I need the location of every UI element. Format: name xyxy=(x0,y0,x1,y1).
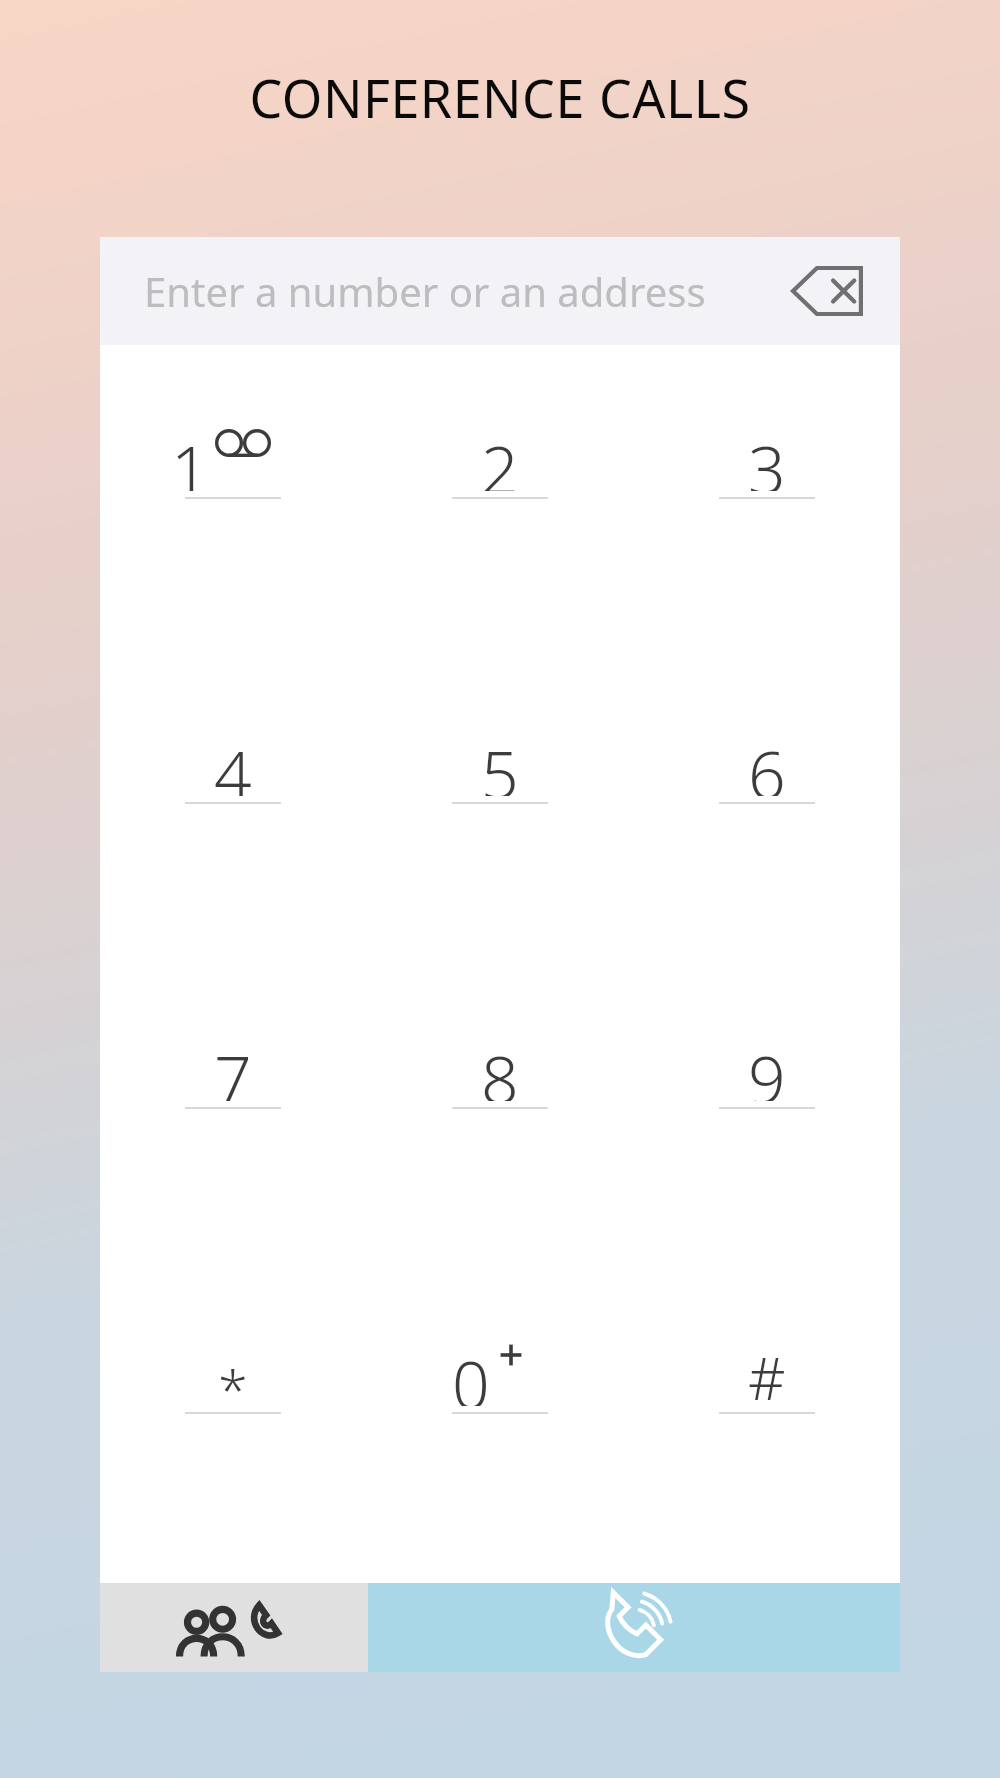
button[interactable]: * xyxy=(100,1338,366,1434)
staticText: 5 xyxy=(481,728,519,796)
staticText: 9 xyxy=(748,1033,786,1101)
button[interactable]: 6 xyxy=(633,728,900,824)
button[interactable]: # xyxy=(633,1338,900,1434)
button[interactable]: 1 xyxy=(100,423,366,519)
button[interactable]: 2 xyxy=(366,423,633,519)
button[interactable]: 0 xyxy=(366,1338,633,1434)
staticText: 1 xyxy=(171,423,209,491)
button[interactable]: 9 xyxy=(633,1033,900,1129)
button[interactable]: Backspace xyxy=(786,256,870,326)
staticText: 3 xyxy=(748,423,786,491)
staticText: 2 xyxy=(481,423,519,491)
button[interactable]: 3 xyxy=(633,423,900,519)
button[interactable]: 8 xyxy=(366,1033,633,1129)
button[interactable]: 5 xyxy=(366,728,633,824)
staticText: Enter a number or an address xyxy=(144,264,786,318)
staticText: 4 xyxy=(214,728,252,796)
staticText: 0 xyxy=(452,1338,490,1406)
staticText: 6 xyxy=(748,728,786,796)
staticText: 8 xyxy=(481,1033,519,1101)
button[interactable]: Call xyxy=(368,1583,900,1672)
button[interactable]: Enter a number or an address xyxy=(100,237,900,345)
staticText: 7 xyxy=(214,1033,252,1101)
button[interactable]: 7 xyxy=(100,1033,366,1129)
button[interactable]: Conference contacts xyxy=(100,1583,368,1672)
staticText: # xyxy=(748,1338,786,1406)
button[interactable]: 4 xyxy=(100,728,366,824)
staticText: * xyxy=(218,1352,248,1406)
staticText: CONFERENCE CALLS xyxy=(0,62,1000,133)
